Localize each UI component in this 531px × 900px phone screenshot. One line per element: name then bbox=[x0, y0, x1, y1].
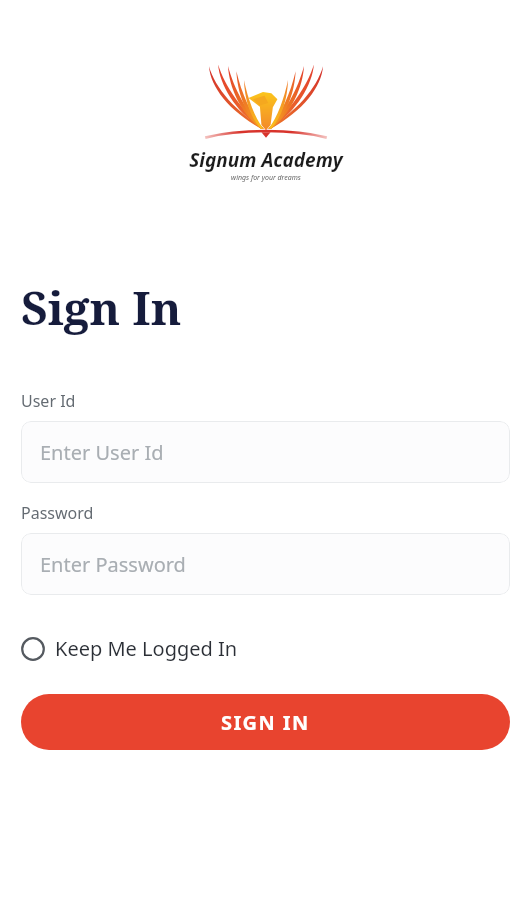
staticText: Keep Me Logged In bbox=[55, 635, 238, 662]
staticText: Password bbox=[21, 502, 94, 524]
staticText: User Id bbox=[21, 390, 76, 412]
staticText: Enter User Id bbox=[40, 439, 164, 466]
button[interactable]: Enter User Id bbox=[21, 421, 510, 483]
button[interactable]: Enter Password bbox=[21, 533, 510, 595]
staticText: SIGN IN bbox=[221, 709, 310, 736]
button[interactable]: Keep Me Logged In bbox=[21, 631, 238, 666]
staticText: wings for your dreams bbox=[231, 173, 301, 183]
staticText: Enter Password bbox=[40, 551, 186, 578]
staticText: Sign In bbox=[21, 276, 182, 339]
staticText: Signum Academy bbox=[189, 147, 343, 173]
button[interactable]: SIGN IN bbox=[21, 694, 510, 750]
